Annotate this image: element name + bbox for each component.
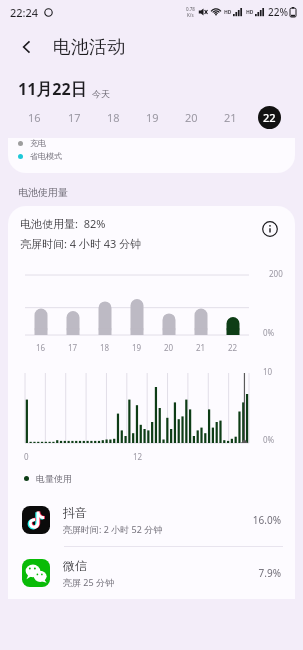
button[interactable]: 20 [172, 100, 211, 134]
staticText: 电量使用 [36, 473, 72, 484]
staticText: 0% [263, 327, 275, 338]
staticText: 21 [224, 110, 237, 125]
staticText: 0 [24, 451, 29, 462]
button[interactable]: 微信 [8, 547, 295, 599]
button[interactable]: 抖音 [8, 494, 295, 546]
staticText: 10 [263, 366, 273, 377]
staticText: 0% [263, 434, 275, 445]
staticText: 22 [263, 110, 276, 125]
staticText: 省电模式 [30, 151, 62, 161]
staticText: 20 [164, 342, 174, 353]
staticText: 21 [196, 342, 206, 353]
staticText: K/s [187, 12, 194, 18]
button[interactable]: Information [257, 216, 283, 242]
staticText: 今天 [92, 88, 110, 99]
staticText: 16.0% [252, 513, 281, 527]
staticText: 22% [268, 5, 288, 19]
staticText: 17 [68, 342, 78, 353]
staticText: 16 [28, 110, 41, 125]
staticText: 亮屏时间: 2 小时 52 分钟 [63, 523, 163, 535]
staticText: 22:24 [10, 5, 39, 20]
staticText: 11月22日 [18, 78, 87, 100]
staticText: 电池使用量 [18, 186, 68, 199]
button[interactable]: Back [14, 34, 40, 60]
staticText: 充电 [30, 138, 46, 148]
staticText: 微信 [63, 558, 87, 573]
button[interactable]: 19 [133, 100, 172, 134]
staticText: 19 [146, 110, 159, 125]
staticText: 200 [269, 268, 283, 279]
button[interactable]: 16 [14, 100, 54, 134]
staticText: 亮屏时间: 4 小时 43 分钟 [20, 236, 142, 251]
button[interactable]: 21 [211, 100, 250, 134]
button[interactable]: 18 [94, 100, 133, 134]
staticText: 电池活动 [53, 36, 125, 59]
staticText: 22 [228, 342, 238, 353]
button[interactable]: 17 [54, 100, 94, 134]
staticText: 18 [100, 342, 110, 353]
staticText: 7.9% [258, 566, 281, 580]
button[interactable]: 22 [250, 100, 289, 134]
staticText: 17 [68, 110, 81, 125]
staticText: HD [224, 9, 232, 16]
staticText: 18 [107, 110, 120, 125]
staticText: 电池使用量: 82% [20, 216, 106, 231]
staticText: 抖音 [63, 505, 87, 520]
staticText: 0.78 [186, 6, 195, 12]
staticText: 16 [36, 342, 46, 353]
staticText: HD [246, 9, 254, 16]
staticText: 12 [133, 451, 143, 462]
staticText: 亮屏 25 分钟 [63, 576, 114, 588]
staticText: 20 [185, 110, 198, 125]
staticText: 19 [132, 342, 142, 353]
